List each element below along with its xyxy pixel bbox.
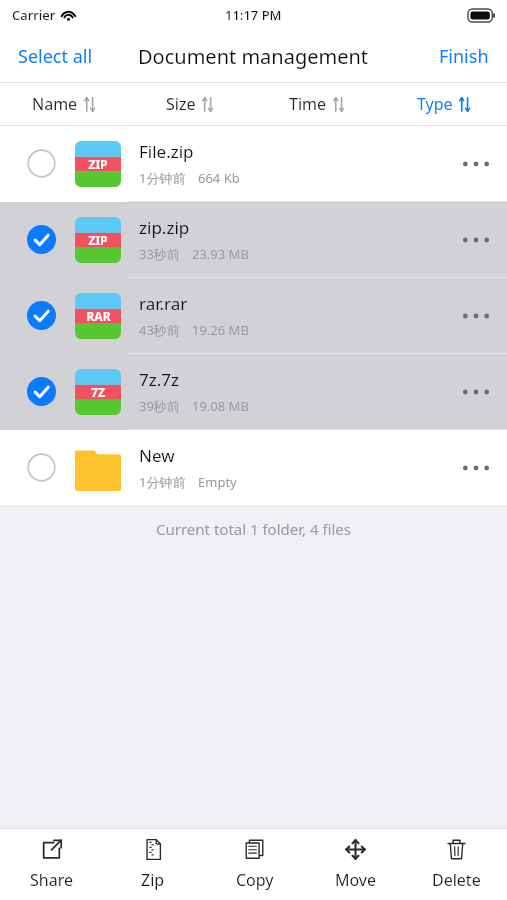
staticText: Zip [141, 869, 165, 891]
staticText: zip.zip [139, 216, 190, 239]
staticText: Current total 1 folder, 4 files [156, 519, 351, 539]
staticText: 19.08 MB [192, 397, 249, 415]
staticText: New [139, 444, 175, 467]
staticText: ZIP [88, 156, 108, 172]
staticText: Share [30, 869, 73, 891]
staticText: 7Z [91, 384, 105, 400]
button[interactable]: Copy [204, 829, 305, 900]
staticText: 11:17 PM [225, 6, 282, 24]
button[interactable]: More options [445, 354, 507, 429]
staticText: ZIP [88, 232, 108, 248]
staticText: Copy [236, 869, 274, 891]
staticText: Select all [18, 44, 93, 69]
staticText: 664 Kb [198, 169, 240, 187]
button[interactable]: ZIP [0, 202, 507, 277]
staticText: Move [335, 869, 377, 891]
staticText: rar.rar [139, 292, 188, 315]
button[interactable]: Zip [102, 829, 204, 900]
staticText: Finish [439, 44, 489, 69]
button[interactable]: ZIP [0, 126, 507, 201]
staticText: Size [166, 93, 196, 115]
button[interactable]: Name [0, 83, 126, 125]
staticText: Time [289, 93, 327, 115]
button[interactable]: Time [253, 83, 380, 125]
staticText: Type [417, 93, 453, 115]
staticText: 1分钟前 [139, 473, 186, 491]
button[interactable]: RAR [0, 278, 507, 353]
staticText: 7z.7z [139, 368, 179, 391]
staticText: 23.93 MB [192, 245, 249, 263]
button[interactable]: More options [445, 430, 507, 505]
button[interactable]: Share [0, 829, 102, 900]
staticText: Delete [432, 869, 481, 891]
button[interactable]: 7Z [0, 354, 507, 429]
staticText: 39秒前 [139, 397, 180, 415]
button[interactable]: Size [126, 83, 253, 125]
staticText: Empty [198, 473, 237, 491]
button[interactable]: Finish [421, 33, 507, 80]
button[interactable]: More options [445, 278, 507, 353]
button[interactable]: Select all [0, 33, 111, 80]
button[interactable]: Delete [406, 829, 507, 900]
staticText: 43秒前 [139, 321, 180, 339]
button[interactable]: New [0, 430, 507, 505]
button[interactable]: Type [380, 83, 507, 125]
staticText: 19.26 MB [192, 321, 249, 339]
staticText: 1分钟前 [139, 169, 186, 187]
staticText: File.zip [139, 140, 194, 163]
button[interactable]: Move [305, 829, 406, 900]
staticText: Name [32, 93, 78, 115]
staticText: Carrier [12, 6, 56, 24]
staticText: RAR [86, 308, 111, 324]
button[interactable]: More options [445, 202, 507, 277]
button[interactable]: More options [445, 126, 507, 201]
staticText: Document management [138, 43, 369, 70]
staticText: 33秒前 [139, 245, 180, 263]
